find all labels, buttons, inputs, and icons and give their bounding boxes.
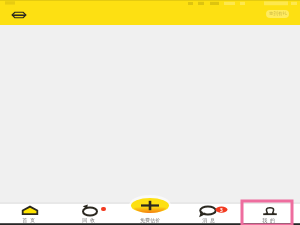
staticText: 首页 xyxy=(22,217,38,223)
button[interactable]: 免费估价 xyxy=(120,204,180,223)
button[interactable]: 首页 xyxy=(0,204,60,223)
staticText: 免费估价 xyxy=(140,217,160,223)
button[interactable]: Publish xyxy=(129,195,171,216)
button[interactable]: 3 xyxy=(180,204,240,223)
staticText: 消息 xyxy=(202,217,218,223)
staticText: 回收 xyxy=(82,217,98,223)
button[interactable]: 我的 xyxy=(240,204,300,223)
staticText: 我的 xyxy=(262,217,278,223)
button[interactable]: Logo xyxy=(12,12,26,18)
staticText: 3 xyxy=(220,207,223,213)
staticText: 签到有礼 xyxy=(269,11,287,17)
button[interactable]: Sign in xyxy=(266,10,289,18)
button[interactable]: 回收 xyxy=(60,204,120,223)
